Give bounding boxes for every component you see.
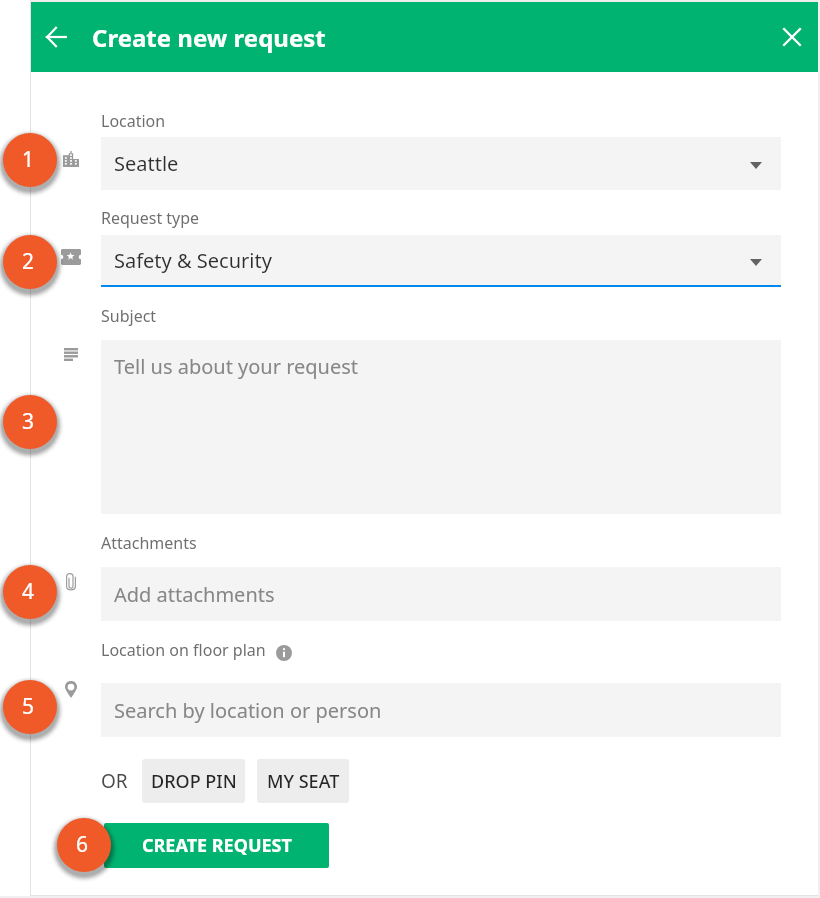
staticText: 2 (22, 247, 35, 276)
staticText: Attachments (101, 532, 197, 554)
button[interactable]: DROP PIN (142, 759, 245, 803)
staticText: Subject (101, 305, 157, 327)
staticText: CREATE REQUEST (142, 833, 292, 858)
staticText: OR (101, 768, 128, 794)
button[interactable]: Safety & Security (101, 235, 781, 285)
staticText: 5 (22, 692, 35, 721)
button[interactable]: Tell us about your request (101, 340, 781, 514)
button[interactable]: Add attachments (101, 567, 781, 621)
button[interactable]: CREATE REQUEST (104, 823, 329, 868)
staticText: 3 (22, 407, 35, 436)
staticText: Request type (101, 207, 200, 229)
staticText: DROP PIN (151, 769, 237, 794)
button[interactable]: Close (774, 19, 810, 55)
staticText: Search by location or person (114, 697, 382, 724)
staticText: Location on floor plan (101, 639, 266, 661)
staticText: Seattle (114, 150, 179, 177)
button[interactable]: Back (38, 19, 74, 55)
button[interactable]: MY SEAT (257, 759, 349, 803)
staticText: Add attachments (114, 581, 275, 608)
button[interactable]: Seattle (101, 137, 781, 190)
staticText: Location (101, 110, 166, 132)
staticText: 6 (76, 830, 89, 859)
staticText: 1 (22, 145, 35, 174)
staticText: Create new request (92, 21, 326, 54)
staticText: MY SEAT (267, 769, 340, 794)
button[interactable]: Search by location or person (101, 683, 781, 737)
staticText: 4 (22, 577, 35, 606)
staticText: Tell us about your request (114, 353, 359, 380)
staticText: Safety & Security (114, 247, 272, 274)
